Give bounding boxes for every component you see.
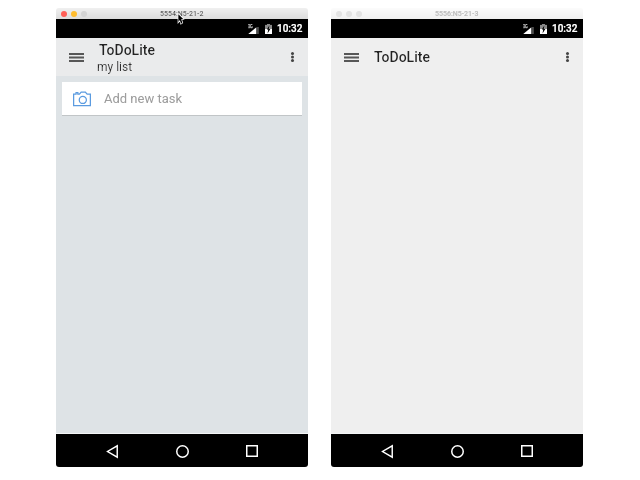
button[interactable]: More options: [556, 46, 578, 68]
button[interactable]: More options: [281, 46, 303, 68]
staticText: 10:32: [552, 23, 578, 35]
button[interactable]: Open navigation drawer: [65, 46, 87, 68]
staticText: ToDoLite: [99, 42, 155, 58]
staticText: ToDoLite: [374, 49, 430, 65]
button[interactable]: Home: [166, 435, 198, 467]
button[interactable]: Home: [441, 435, 473, 467]
button[interactable]: Add new task: [62, 82, 302, 115]
button[interactable]: Recent apps: [236, 435, 268, 467]
button[interactable]: Recent apps: [511, 435, 543, 467]
staticText: 5554:N5-21-2: [160, 10, 204, 18]
staticText: Add new task: [104, 91, 183, 106]
staticText: 5556:N5-21-3: [435, 10, 479, 18]
staticText: my list: [97, 60, 133, 74]
button[interactable]: Back: [371, 435, 403, 467]
button[interactable]: Open navigation drawer: [340, 46, 362, 68]
staticText: 10:32: [277, 23, 303, 35]
button[interactable]: Back: [96, 435, 128, 467]
